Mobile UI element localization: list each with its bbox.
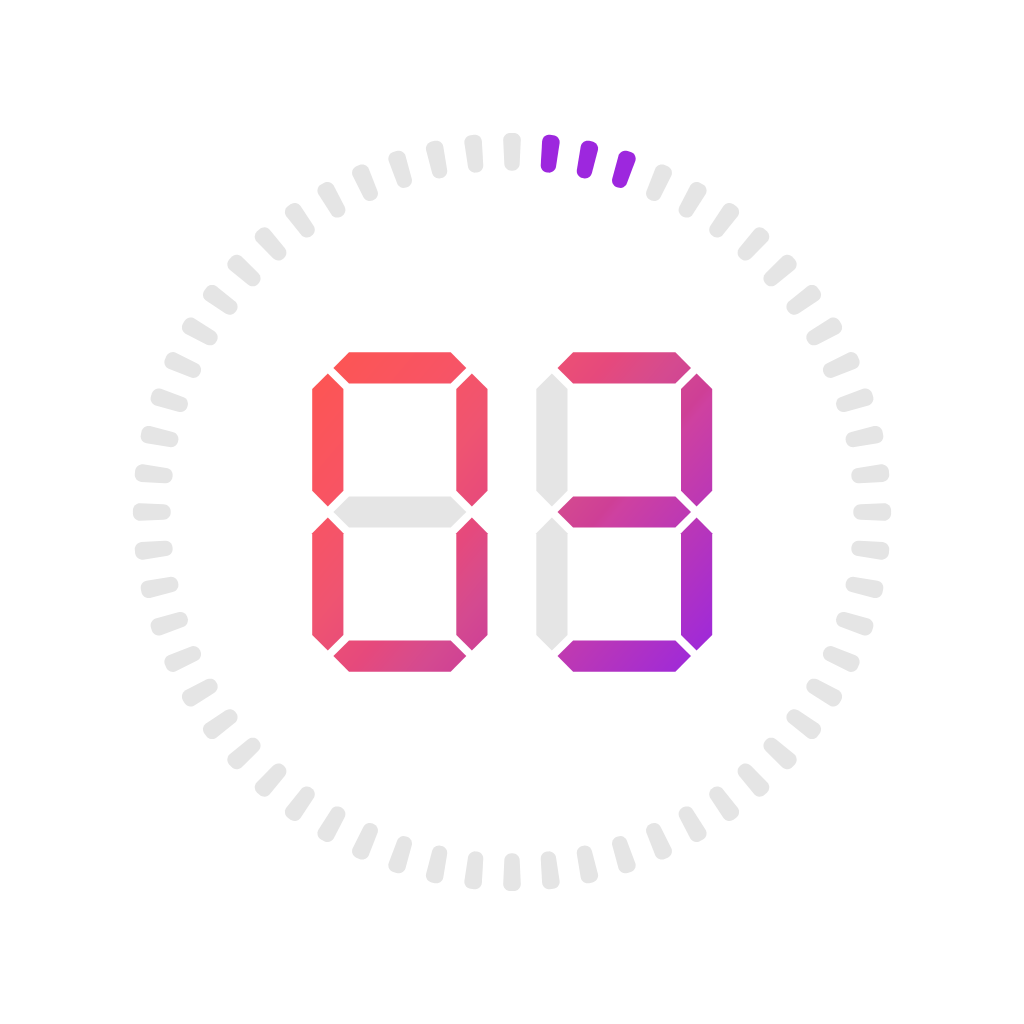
button[interactable]: Timer dial, 03 seconds elapsed <box>0 0 1024 1024</box>
